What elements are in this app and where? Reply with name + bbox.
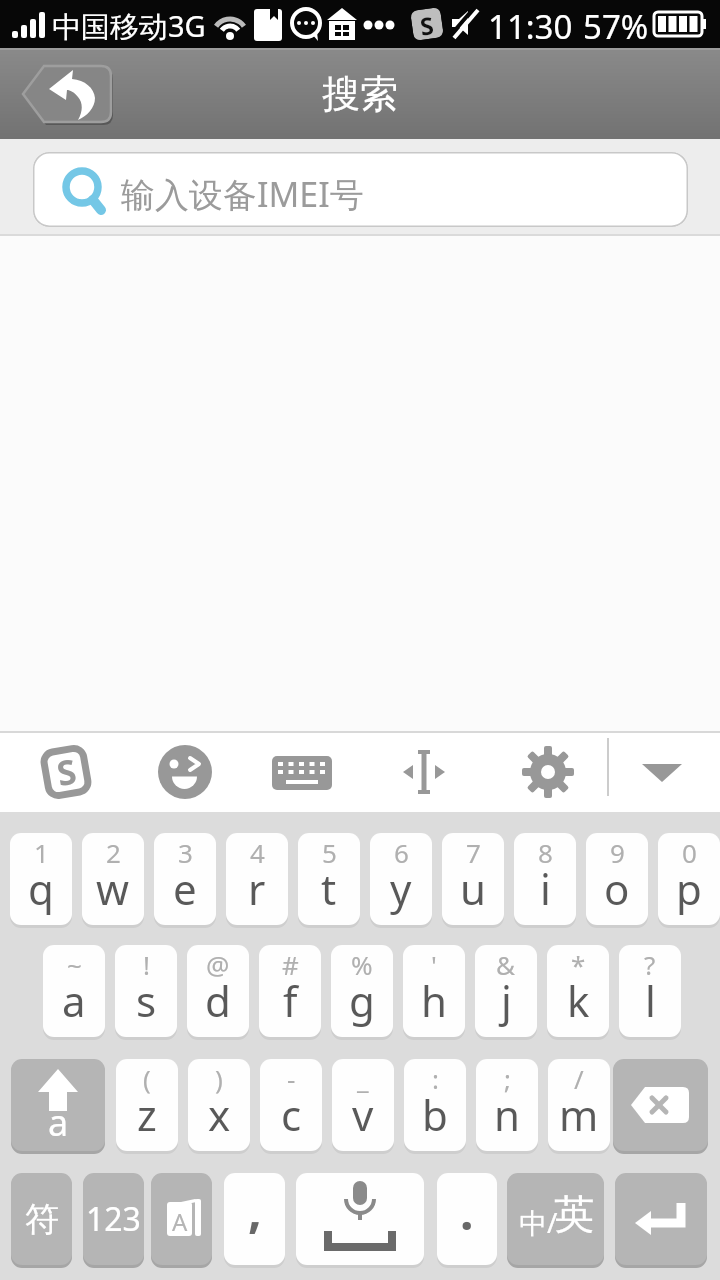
staticText: y	[390, 860, 412, 917]
button[interactable]: )	[188, 1059, 250, 1151]
button[interactable]: *	[547, 945, 609, 1037]
button[interactable]	[155, 742, 215, 802]
staticText: g	[349, 972, 375, 1029]
button[interactable]: 123	[83, 1173, 144, 1265]
staticText: p	[676, 860, 702, 917]
staticText: x	[208, 1086, 231, 1143]
button[interactable]: 0	[658, 833, 720, 925]
button[interactable]: (	[116, 1059, 178, 1151]
button[interactable]: -	[260, 1059, 322, 1151]
button[interactable]: S	[36, 742, 96, 802]
staticText: b	[422, 1086, 448, 1143]
staticText: v	[352, 1086, 374, 1143]
staticText: 57%	[583, 4, 649, 49]
staticText: (	[143, 1061, 151, 1096]
button[interactable]: 7	[442, 833, 504, 925]
staticText: i	[540, 860, 551, 917]
staticText: 中国移动3G	[52, 6, 206, 46]
button[interactable]: 6	[370, 833, 432, 925]
staticText: #	[282, 947, 299, 982]
button[interactable]	[296, 1173, 424, 1265]
staticText: 1	[34, 835, 49, 870]
button[interactable]: 2	[82, 833, 144, 925]
button[interactable]: %	[331, 945, 393, 1037]
staticText: e	[173, 860, 197, 917]
button[interactable]	[615, 1173, 707, 1265]
staticText: :	[432, 1061, 439, 1096]
button[interactable]: ~	[43, 945, 105, 1037]
button[interactable]: 3	[154, 833, 216, 925]
staticText: k	[567, 972, 590, 1029]
button[interactable]	[613, 1059, 708, 1151]
button[interactable]: #	[259, 945, 321, 1037]
staticText: f	[283, 972, 298, 1029]
staticText: .	[460, 1179, 474, 1244]
button[interactable]	[20, 63, 114, 125]
staticText: s	[136, 972, 157, 1029]
staticText: o	[604, 860, 630, 917]
button[interactable]: '	[403, 945, 465, 1037]
button[interactable]: !	[115, 945, 177, 1037]
button[interactable]: a	[11, 1059, 105, 1151]
staticText: 输入设备IMEI号	[121, 171, 364, 217]
button[interactable]: 1	[10, 833, 72, 925]
button[interactable]	[270, 742, 334, 802]
button[interactable]: ;	[476, 1059, 538, 1151]
staticText: h	[421, 972, 447, 1029]
button[interactable]	[518, 742, 578, 802]
button[interactable]: 8	[514, 833, 576, 925]
staticText: 11:30	[488, 4, 573, 49]
staticText: S	[53, 748, 80, 796]
staticText: A	[172, 1205, 188, 1238]
staticText: S	[418, 8, 436, 40]
button[interactable]: @	[187, 945, 249, 1037]
button[interactable]: ,	[224, 1173, 285, 1265]
button[interactable]	[394, 742, 454, 802]
staticText: @	[206, 947, 230, 982]
button[interactable]: &	[475, 945, 537, 1037]
staticText: 8	[538, 835, 553, 870]
staticText: w	[96, 860, 130, 917]
staticText: 4	[250, 835, 265, 870]
staticText: )	[215, 1061, 223, 1096]
staticText: %	[351, 947, 373, 982]
staticText: 2	[106, 835, 121, 870]
staticText: 6	[394, 835, 409, 870]
button[interactable]: 5	[298, 833, 360, 925]
staticText: 7	[466, 835, 481, 870]
staticText: 3	[178, 835, 193, 870]
staticText: a	[62, 972, 86, 1029]
staticText: 123	[86, 1197, 141, 1241]
button[interactable]: /	[548, 1059, 610, 1151]
staticText: z	[137, 1086, 157, 1143]
staticText: ,	[248, 1177, 262, 1242]
button[interactable]: 4	[226, 833, 288, 925]
button[interactable]: 9	[586, 833, 648, 925]
button[interactable]	[632, 742, 692, 802]
staticText: l	[645, 972, 656, 1029]
staticText: r	[248, 860, 266, 917]
staticText: c	[281, 1086, 302, 1143]
staticText: 搜索	[322, 70, 398, 118]
staticText: !	[143, 947, 150, 982]
button[interactable]: A	[151, 1173, 212, 1265]
staticText: /	[574, 1061, 584, 1096]
button[interactable]: ?	[619, 945, 681, 1037]
staticText: 英	[554, 1189, 594, 1239]
button[interactable]: _	[332, 1059, 394, 1151]
staticText: 5	[322, 835, 337, 870]
button[interactable]: 符	[11, 1173, 72, 1265]
button[interactable]: 输入设备IMEI号	[33, 152, 688, 227]
button[interactable]: .	[437, 1173, 497, 1265]
staticText: q	[28, 860, 54, 917]
staticText: '	[431, 947, 437, 982]
staticText: *	[571, 947, 586, 982]
staticText: ?	[644, 947, 656, 982]
button[interactable]: :	[404, 1059, 466, 1151]
staticText: u	[460, 860, 486, 917]
button[interactable]: 中/	[507, 1173, 604, 1265]
staticText: t	[321, 860, 337, 917]
staticText: j	[501, 972, 512, 1029]
staticText: -	[287, 1061, 296, 1096]
staticText: 符	[25, 1198, 59, 1241]
